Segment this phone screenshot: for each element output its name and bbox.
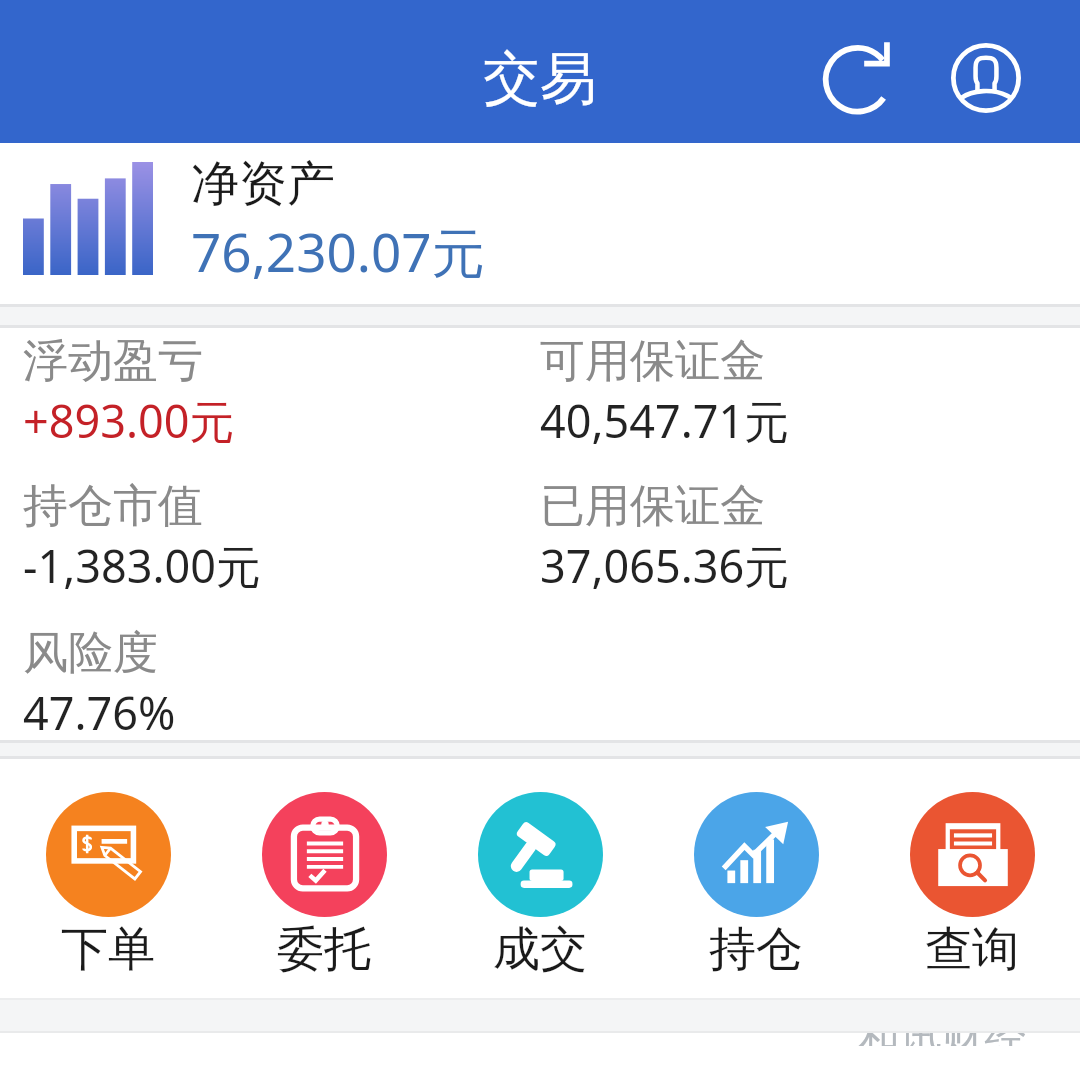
staticText: 持仓市值 [23,478,203,535]
staticText: 风险度 [23,625,158,682]
staticText: 委托 [277,920,371,979]
button[interactable]: Refresh [812,12,908,143]
button[interactable]: 净资产 [0,143,1080,304]
staticText: 和讯财经 [858,1033,1063,1046]
staticText: 净资产 [191,154,335,214]
staticText: 76,230.07元 [191,215,485,287]
button[interactable]: Account [942,12,1030,143]
button[interactable]: 查询 [864,759,1080,998]
staticText: 40,547.71元 [540,390,790,451]
staticText: 查询 [925,920,1019,979]
staticText: 37,065.36元 [540,535,790,596]
button[interactable]: 持仓 [648,759,864,998]
button[interactable]: 下单 [0,759,216,998]
button[interactable]: 委托 [216,759,432,998]
staticText: 可用保证金 [540,333,765,390]
staticText: 下单 [61,920,155,979]
staticText: -1,383.00元 [23,535,262,596]
staticText: 47.76% [23,682,176,740]
button[interactable]: 成交 [432,759,648,998]
staticText: 已用保证金 [540,478,765,535]
staticText: 浮动盈亏 [23,333,203,390]
staticText: 持仓 [709,920,803,979]
staticText: +893.00元 [23,390,235,451]
staticText: 交易 [483,43,597,115]
staticText: 成交 [493,920,587,979]
